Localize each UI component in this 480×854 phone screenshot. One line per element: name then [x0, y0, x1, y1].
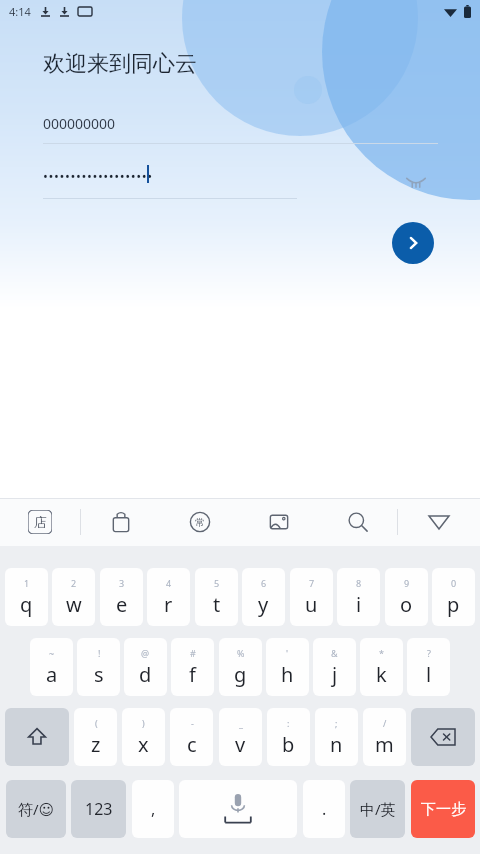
- staticText: %: [237, 647, 245, 659]
- button[interactable]: Sign in: [392, 222, 434, 264]
- button[interactable]: (: [74, 708, 117, 766]
- staticText: 5: [214, 577, 220, 589]
- staticText: w: [66, 591, 82, 618]
- staticText: z: [91, 731, 101, 758]
- button[interactable]: 7: [290, 568, 333, 626]
- staticText: ': [286, 647, 289, 659]
- button[interactable]: search: [318, 498, 397, 546]
- button[interactable]: /: [363, 708, 406, 766]
- staticText: &: [331, 647, 338, 659]
- staticText: 6: [261, 577, 267, 589]
- button[interactable]: Hide keyboard: [398, 498, 480, 546]
- staticText: e: [116, 591, 128, 618]
- staticText: i: [356, 591, 362, 618]
- staticText: g: [234, 661, 247, 688]
- staticText: 9: [404, 577, 410, 589]
- staticText: o: [400, 591, 413, 618]
- button[interactable]: ): [122, 708, 165, 766]
- button[interactable]: 6: [242, 568, 285, 626]
- button[interactable]: 8: [337, 568, 380, 626]
- button[interactable]: *: [360, 638, 403, 696]
- staticText: u: [305, 591, 318, 618]
- staticText: 常: [195, 516, 205, 529]
- button[interactable]: 1: [5, 568, 48, 626]
- button[interactable]: 4: [147, 568, 190, 626]
- button[interactable]: Show password: [398, 163, 434, 199]
- button[interactable]: Backspace: [411, 708, 475, 766]
- button[interactable]: 符/☺: [6, 780, 66, 838]
- staticText: -: [191, 717, 194, 729]
- button[interactable]: Store: [0, 498, 80, 546]
- staticText: !: [98, 647, 101, 659]
- staticText: t: [213, 591, 221, 618]
- button[interactable]: Space: [179, 780, 297, 838]
- button[interactable]: 9: [385, 568, 428, 626]
- button[interactable]: freq: [160, 498, 239, 546]
- staticText: 8: [356, 577, 362, 589]
- staticText: v: [235, 731, 246, 758]
- staticText: l: [426, 661, 432, 688]
- staticText: 4: [166, 577, 172, 589]
- staticText: 3: [119, 577, 125, 589]
- button[interactable]: .: [303, 780, 345, 838]
- button[interactable]: _: [219, 708, 262, 766]
- button[interactable]: pic: [239, 498, 318, 546]
- staticText: c: [187, 731, 197, 758]
- staticText: 7: [309, 577, 315, 589]
- button[interactable]: &: [313, 638, 356, 696]
- button[interactable]: :: [267, 708, 310, 766]
- staticText: 2: [71, 577, 77, 589]
- button[interactable]: Shift: [5, 708, 69, 766]
- staticText: .: [322, 798, 327, 820]
- staticText: m: [375, 731, 394, 758]
- staticText: p: [447, 591, 460, 618]
- staticText: ~: [49, 647, 55, 659]
- staticText: #: [190, 647, 196, 659]
- staticText: _: [239, 717, 243, 729]
- staticText: 符/☺: [18, 799, 55, 819]
- button[interactable]: 123: [71, 780, 126, 838]
- button[interactable]: 下一步: [411, 780, 475, 838]
- staticText: /: [383, 717, 387, 729]
- button[interactable]: %: [219, 638, 262, 696]
- button[interactable]: !: [77, 638, 120, 696]
- staticText: n: [330, 731, 343, 758]
- staticText: r: [164, 591, 173, 618]
- staticText: 店: [34, 514, 47, 530]
- staticText: j: [332, 661, 338, 688]
- staticText: ): [142, 717, 145, 729]
- staticText: 中/英: [360, 799, 396, 819]
- button[interactable]: -: [170, 708, 213, 766]
- staticText: (: [95, 717, 98, 729]
- staticText: ,: [151, 798, 156, 820]
- button[interactable]: ': [266, 638, 309, 696]
- staticText: *: [379, 647, 384, 659]
- staticText: 下一步: [421, 800, 466, 819]
- staticText: 000000000: [43, 114, 116, 133]
- staticText: 0: [451, 577, 457, 589]
- button[interactable]: ,: [132, 780, 174, 838]
- staticText: b: [282, 731, 295, 758]
- button[interactable]: bag: [81, 498, 160, 546]
- button[interactable]: 5: [195, 568, 238, 626]
- button[interactable]: 0: [432, 568, 475, 626]
- button[interactable]: @: [124, 638, 167, 696]
- staticText: ;: [335, 717, 338, 729]
- staticText: k: [376, 661, 387, 688]
- button[interactable]: 中/英: [350, 780, 405, 838]
- staticText: 4:14: [9, 4, 31, 19]
- button[interactable]: 2: [52, 568, 95, 626]
- staticText: ?: [427, 647, 431, 659]
- staticText: s: [94, 661, 104, 688]
- staticText: ••••••••••••••••••••: [43, 167, 153, 185]
- button[interactable]: ~: [30, 638, 73, 696]
- staticText: @: [141, 647, 150, 659]
- button[interactable]: #: [171, 638, 214, 696]
- staticText: 1: [24, 577, 30, 589]
- button[interactable]: ?: [407, 638, 450, 696]
- staticText: 123: [85, 798, 113, 820]
- staticText: h: [281, 661, 294, 688]
- button[interactable]: ;: [315, 708, 358, 766]
- button[interactable]: 3: [100, 568, 143, 626]
- staticText: x: [138, 731, 149, 758]
